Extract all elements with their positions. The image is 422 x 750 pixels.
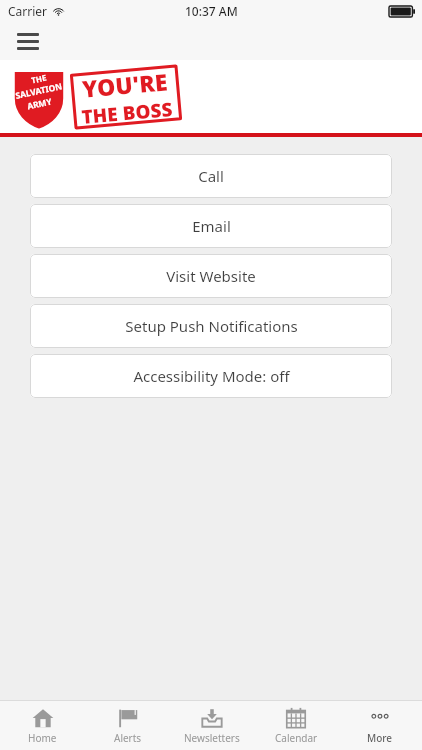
staticText: More [367, 731, 393, 745]
staticText: Setup Push Notifications [125, 316, 298, 336]
staticText: SALVATION [14, 80, 64, 102]
staticText: Alerts [114, 731, 142, 745]
button[interactable]: More [338, 701, 422, 750]
button[interactable]: Calendar [254, 701, 338, 750]
staticText: Call [198, 166, 224, 186]
button[interactable]: Setup Push Notifications [30, 304, 392, 348]
staticText: Email [192, 216, 231, 236]
staticText: YOU'RE [81, 65, 169, 104]
staticText: Calendar [275, 731, 318, 745]
staticText: ARMY [26, 95, 53, 112]
staticText: THE [30, 71, 48, 86]
staticText: Visit Website [166, 266, 256, 286]
button[interactable]: Home [0, 701, 85, 750]
staticText: Home [28, 731, 57, 745]
button[interactable]: Visit Website [30, 254, 392, 298]
button[interactable]: Menu [8, 22, 48, 60]
button[interactable]: Accessibility Mode: off [30, 354, 392, 398]
staticText: 10:37 AM [185, 3, 238, 19]
staticText: Newsletters [184, 731, 240, 745]
staticText: Carrier [8, 3, 48, 19]
button[interactable]: Call [30, 154, 392, 198]
staticText: Accessibility Mode: off [133, 366, 290, 386]
button[interactable]: Newsletters [170, 701, 254, 750]
button[interactable]: Email [30, 204, 392, 248]
button[interactable]: Alerts [85, 701, 170, 750]
staticText: THE BOSS [80, 96, 174, 129]
